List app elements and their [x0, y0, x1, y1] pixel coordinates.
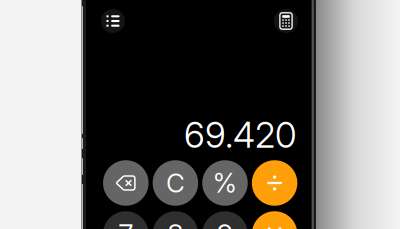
staticText: 9: [216, 217, 233, 229]
button[interactable]: Multiply: [252, 211, 297, 229]
button[interactable]: Calculator mode: [274, 9, 298, 33]
button[interactable]: History: [101, 9, 125, 33]
staticText: %: [212, 167, 237, 199]
staticText: 7: [118, 217, 133, 229]
button[interactable]: 9: [202, 211, 248, 229]
button[interactable]: %: [202, 160, 248, 206]
button[interactable]: Divide: [252, 160, 297, 206]
button[interactable]: 8: [153, 211, 198, 229]
button[interactable]: 7: [103, 211, 148, 229]
button[interactable]: C: [153, 160, 198, 206]
staticText: C: [166, 167, 185, 199]
button[interactable]: Delete: [103, 160, 148, 206]
staticText: 69.420: [184, 114, 297, 156]
staticText: 8: [167, 217, 184, 229]
